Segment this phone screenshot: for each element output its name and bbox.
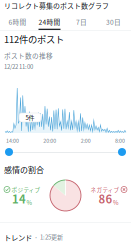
staticText: 86 <box>98 190 112 207</box>
staticText: 14:00 <box>6 137 19 144</box>
staticText: 感情の割合 <box>4 164 44 175</box>
staticText: ネガティブ <box>90 185 119 193</box>
staticText: ポスト数の推移 <box>4 51 53 60</box>
staticText: 12/22 11:00 <box>4 62 33 71</box>
staticText: 112件のポスト <box>4 32 64 46</box>
staticText: トレンド <box>4 232 32 242</box>
staticText: 8:00 <box>115 137 125 144</box>
staticText: 7日 <box>76 17 87 27</box>
staticText: % <box>113 198 119 207</box>
staticText: 30日 <box>106 17 121 27</box>
staticText: % <box>26 198 32 207</box>
staticText: 1:25更新 <box>40 233 63 241</box>
staticText: 6時間 <box>8 17 26 27</box>
staticText: リコレクト募集のポスト数グラフ <box>4 0 109 10</box>
button[interactable]: 30日 <box>97 17 129 30</box>
staticText: 20:00 <box>43 137 56 144</box>
staticText: · <box>34 232 38 242</box>
staticText: 24時間 <box>38 17 60 27</box>
staticText: 14 <box>12 190 26 207</box>
staticText: 5件 <box>25 113 34 122</box>
button[interactable]: 24時間 <box>33 17 65 30</box>
staticText: ポジティブ <box>11 185 40 193</box>
button[interactable]: トレンド <box>0 224 131 250</box>
staticText: 2:00 <box>81 137 91 144</box>
button[interactable]: 6時間 <box>1 17 33 30</box>
button[interactable]: 7日 <box>65 17 97 30</box>
